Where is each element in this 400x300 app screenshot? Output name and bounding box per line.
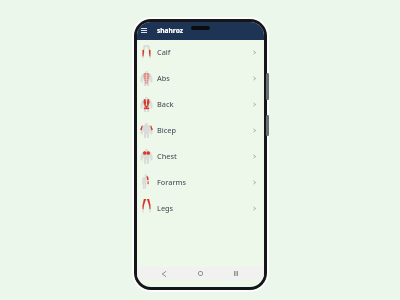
- button[interactable]: Menu: [139, 25, 149, 35]
- staticText: Legs: [157, 203, 174, 213]
- staticText: Calf: [157, 47, 171, 57]
- staticText: shahroz: [157, 26, 183, 35]
- button[interactable]: Chest: [137, 143, 264, 169]
- staticText: Abs: [157, 73, 170, 83]
- staticText: Back: [157, 99, 174, 109]
- staticText: Chest: [157, 151, 177, 161]
- button[interactable]: Recents: [224, 267, 248, 280]
- button[interactable]: Bicep: [137, 117, 264, 143]
- button[interactable]: Forarms: [137, 169, 264, 195]
- staticText: Forarms: [157, 177, 186, 187]
- button[interactable]: Back: [137, 91, 264, 117]
- button[interactable]: Home: [188, 267, 212, 280]
- button[interactable]: Calf: [137, 39, 264, 65]
- button[interactable]: Abs: [137, 65, 264, 91]
- button[interactable]: Legs: [137, 195, 264, 221]
- button[interactable]: Back: [152, 267, 176, 280]
- staticText: Bicep: [157, 125, 177, 135]
